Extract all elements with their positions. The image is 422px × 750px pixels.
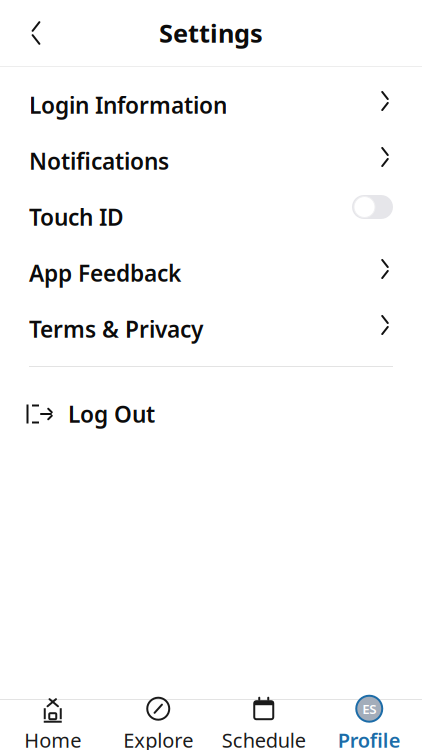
- staticText: Explore: [123, 727, 193, 750]
- staticText: App Feedback: [29, 258, 181, 288]
- staticText: Home: [24, 727, 81, 750]
- staticText: Settings: [159, 16, 263, 50]
- button[interactable]: App Feedback: [0, 245, 422, 301]
- button[interactable]: Back: [14, 11, 58, 55]
- staticText: Login Information: [29, 90, 227, 120]
- staticText: Terms & Privacy: [29, 314, 203, 344]
- button[interactable]: Notifications: [0, 133, 422, 189]
- button[interactable]: Touch ID: [0, 189, 422, 245]
- staticText: Touch ID: [29, 202, 124, 232]
- button[interactable]: Explore: [105, 689, 211, 750]
- staticText: Profile: [338, 727, 401, 750]
- staticText: Schedule: [222, 727, 306, 750]
- staticText: Log Out: [68, 399, 155, 429]
- button[interactable]: Log Out: [0, 386, 422, 442]
- staticText: ES: [362, 700, 376, 718]
- button[interactable]: Terms & Privacy: [0, 301, 422, 357]
- button[interactable]: Login Information: [0, 77, 422, 133]
- button[interactable]: Home: [0, 689, 105, 750]
- button[interactable]: Schedule: [211, 689, 316, 750]
- staticText: Notifications: [29, 146, 169, 176]
- button[interactable]: ES: [316, 689, 422, 750]
